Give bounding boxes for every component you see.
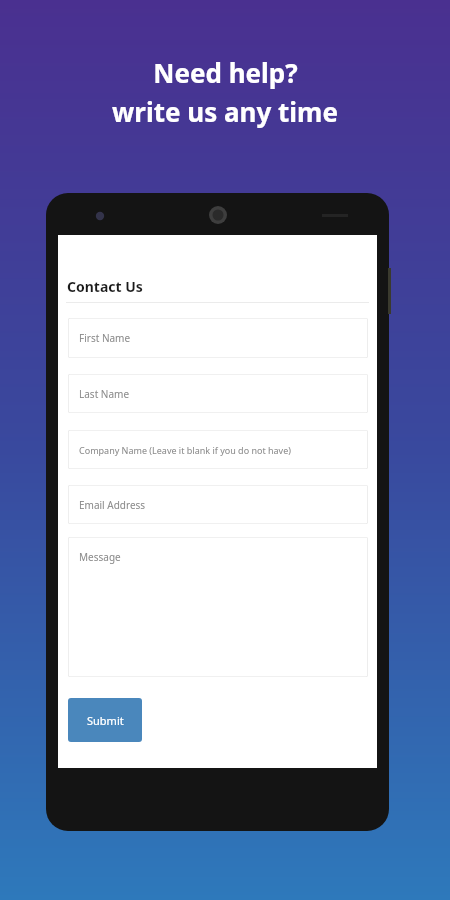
staticText: Email Address: [79, 498, 146, 512]
button[interactable]: Company Name (Leave it blank if you do n…: [68, 430, 368, 469]
staticText: Submit: [87, 713, 124, 728]
staticText: Company Name (Leave it blank if you do n…: [79, 444, 291, 456]
staticText: Message: [79, 550, 121, 564]
button[interactable]: Last Name: [68, 374, 368, 413]
staticText: write us any time: [112, 94, 338, 129]
staticText: First Name: [79, 331, 131, 345]
staticText: Need help?: [153, 55, 298, 90]
button[interactable]: Message: [68, 537, 368, 677]
button[interactable]: Submit: [68, 698, 142, 742]
button[interactable]: Email Address: [68, 485, 368, 524]
staticText: Last Name: [79, 387, 130, 401]
button[interactable]: First Name: [68, 318, 368, 358]
staticText: Contact Us: [67, 277, 143, 296]
